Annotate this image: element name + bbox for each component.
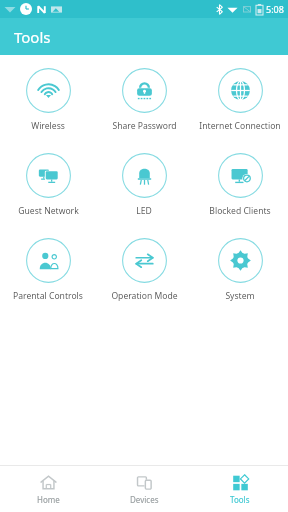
staticText: Parental Controls — [13, 290, 83, 302]
button[interactable]: Share Password — [96, 68, 192, 132]
staticText: Blocked Clients — [209, 205, 271, 217]
staticText: Internet Connection — [199, 120, 281, 132]
staticText: Tools — [230, 494, 250, 505]
staticText: System — [225, 290, 255, 302]
staticText: Devices — [130, 494, 159, 505]
staticText: 5:08 — [266, 3, 284, 15]
button[interactable]: LED — [96, 153, 192, 217]
staticText: Home — [37, 494, 60, 505]
button[interactable]: Internet Connection — [192, 68, 288, 132]
staticText: Share Password — [112, 120, 177, 132]
staticText: LED — [136, 205, 152, 217]
staticText: Guest Network — [18, 205, 79, 217]
button[interactable]: Guest Network — [0, 153, 96, 217]
button[interactable]: Tools — [192, 466, 288, 512]
staticText: Operation Mode — [111, 290, 178, 302]
button[interactable]: Operation Mode — [96, 238, 192, 302]
button[interactable]: Home — [0, 466, 96, 512]
staticText: Tools — [14, 27, 51, 47]
staticText: Wireless — [31, 120, 65, 132]
button[interactable]: Parental Controls — [0, 238, 96, 302]
button[interactable]: System — [192, 238, 288, 302]
button[interactable]: Blocked Clients — [192, 153, 288, 217]
button[interactable]: Wireless — [0, 68, 96, 132]
button[interactable]: Devices — [96, 466, 192, 512]
